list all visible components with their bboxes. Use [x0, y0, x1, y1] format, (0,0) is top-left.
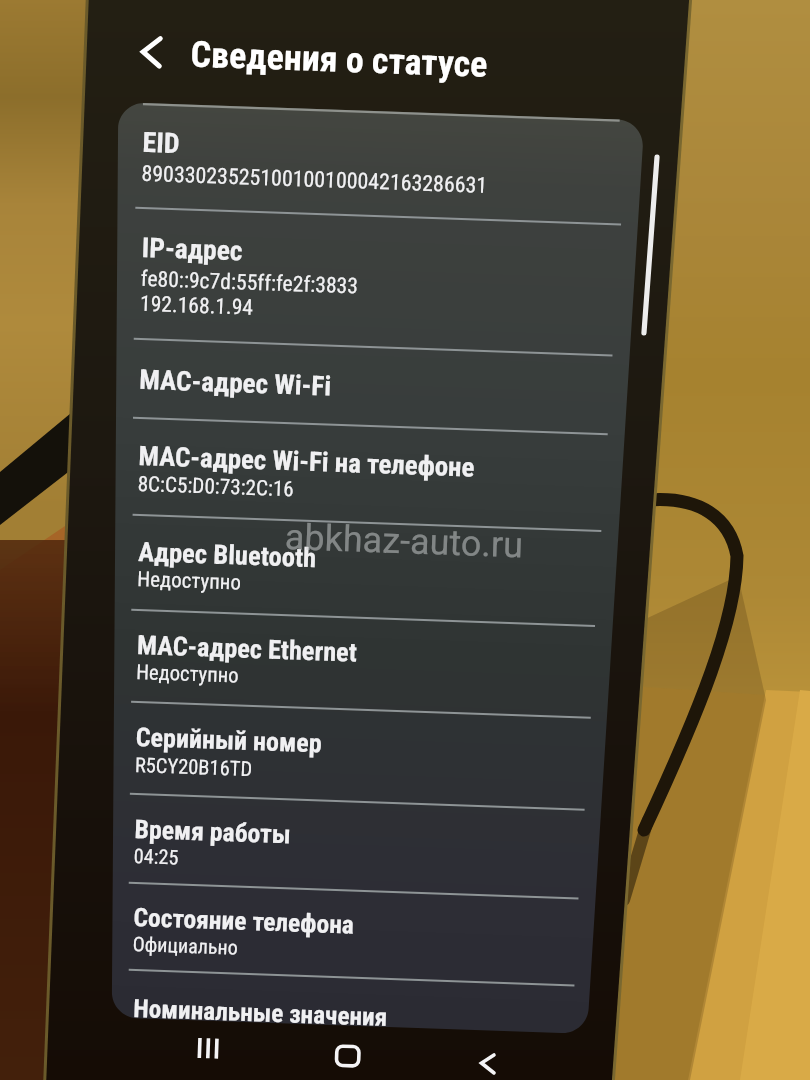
staticText: Время работы — [134, 814, 292, 849]
staticText: abkhaz-auto.ru — [284, 516, 524, 566]
button[interactable]: MAC-адрес Ethernet — [112, 608, 612, 717]
staticText: Недоступно — [136, 660, 239, 688]
staticText: MAC-адрес Wi-Fi — [139, 364, 332, 403]
staticText: 89033023525100100100042163286631 — [141, 161, 488, 199]
staticText: 192.168.1.94 — [139, 291, 254, 320]
staticText: 04:25 — [133, 844, 179, 870]
button[interactable]: Главный экран — [321, 1032, 371, 1080]
button[interactable]: EID — [116, 102, 643, 224]
staticText: Номинальные значения — [133, 994, 388, 1033]
staticText: 8C:C5:D0:73:2C:16 — [137, 471, 295, 501]
staticText: MAC-адрес Ethernet — [136, 630, 357, 669]
button[interactable]: IP-адрес — [115, 206, 636, 355]
staticText: IP-адрес — [141, 231, 243, 266]
button[interactable]: Адрес Bluetooth — [113, 513, 617, 626]
button[interactable]: MAC-адрес Wi-Fi на телефоне — [114, 416, 623, 531]
staticText: Официально — [132, 932, 239, 959]
button[interactable]: Номинальные значения — [110, 968, 590, 1075]
button[interactable]: Время работы — [111, 792, 601, 898]
staticText: Адрес Bluetooth — [138, 536, 318, 573]
staticText: fe80::9c7d:55ff:fe2f:3833 — [140, 266, 359, 298]
staticText: Серийный номер — [135, 722, 322, 759]
button[interactable]: MAC-адрес Wi-Fi — [115, 337, 628, 434]
button[interactable]: Назад — [467, 1041, 512, 1080]
staticText: Сведения о статусе — [190, 33, 488, 86]
staticText: R5CY20B16TD — [134, 753, 253, 781]
button[interactable]: Назад — [122, 10, 554, 101]
staticText: Недоступно — [137, 567, 242, 595]
button[interactable]: Серийный номер — [112, 700, 607, 809]
other: Назад — [136, 36, 169, 69]
staticText: MAC-адрес Wi-Fi на телефоне — [138, 440, 475, 484]
staticText: Состояние телефона — [133, 902, 355, 940]
button[interactable]: Недавние приложения — [183, 1025, 231, 1072]
button[interactable]: Состояние телефона — [110, 881, 594, 985]
staticText: EID — [142, 126, 180, 160]
